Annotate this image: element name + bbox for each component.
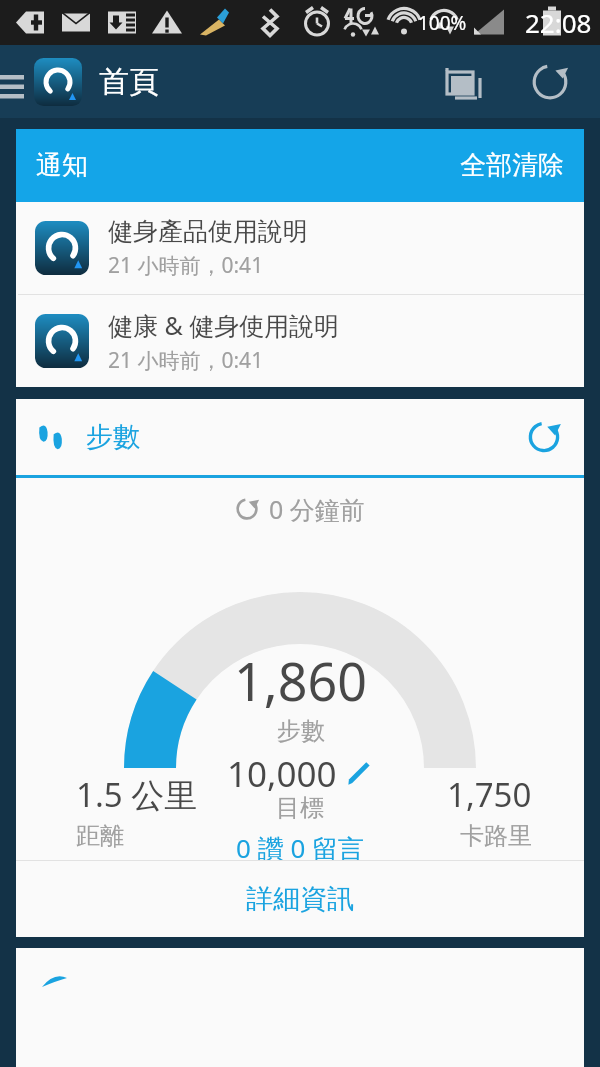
staticText: 22:08 [525, 5, 592, 40]
staticText: 健身產品使用說明 [108, 216, 308, 247]
staticText: 0 讚 0 留言 [236, 830, 365, 860]
button[interactable]: 詳細資訊 [16, 861, 584, 937]
staticText: 健康 & 健身使用說明 [108, 308, 340, 342]
button[interactable]: 健身產品使用說明 [16, 202, 584, 294]
staticText: 距離 [76, 821, 124, 851]
staticText: 21 小時前，0:41 [108, 251, 264, 280]
staticText: 步數 [86, 420, 140, 454]
staticText: 詳細資訊 [246, 882, 354, 916]
staticText: 首頁 [99, 63, 159, 101]
button[interactable]: Menu [0, 45, 34, 118]
staticText: 10,000 [227, 750, 337, 798]
staticText: 步數 [277, 716, 325, 746]
staticText: 目標 [276, 793, 324, 823]
button[interactable]: 通知 [16, 129, 584, 202]
staticText: 全部清除 [460, 149, 564, 182]
button[interactable]: 10,000 [227, 750, 373, 798]
button[interactable]: 步數 [16, 399, 584, 475]
button[interactable]: App icon [33, 57, 83, 107]
staticText: 通知 [36, 149, 88, 182]
button[interactable]: 0 讚 0 留言 [236, 830, 365, 860]
button[interactable]: Refresh [522, 54, 578, 110]
staticText: 卡路里 [460, 821, 532, 851]
button[interactable]: Cards [436, 54, 492, 110]
staticText: 100% [418, 10, 467, 36]
staticText: 1,750 [447, 772, 532, 817]
staticText: 1.5 公里 [76, 772, 198, 817]
button[interactable]: Refresh steps [518, 411, 570, 463]
staticText: 1,860 [234, 645, 367, 716]
staticText: 0 分鐘前 [269, 492, 365, 526]
button[interactable]: 健康 & 健身使用說明 [16, 295, 584, 387]
staticText: 21 小時前，0:41 [108, 346, 264, 375]
other: Edit goal [345, 760, 373, 788]
